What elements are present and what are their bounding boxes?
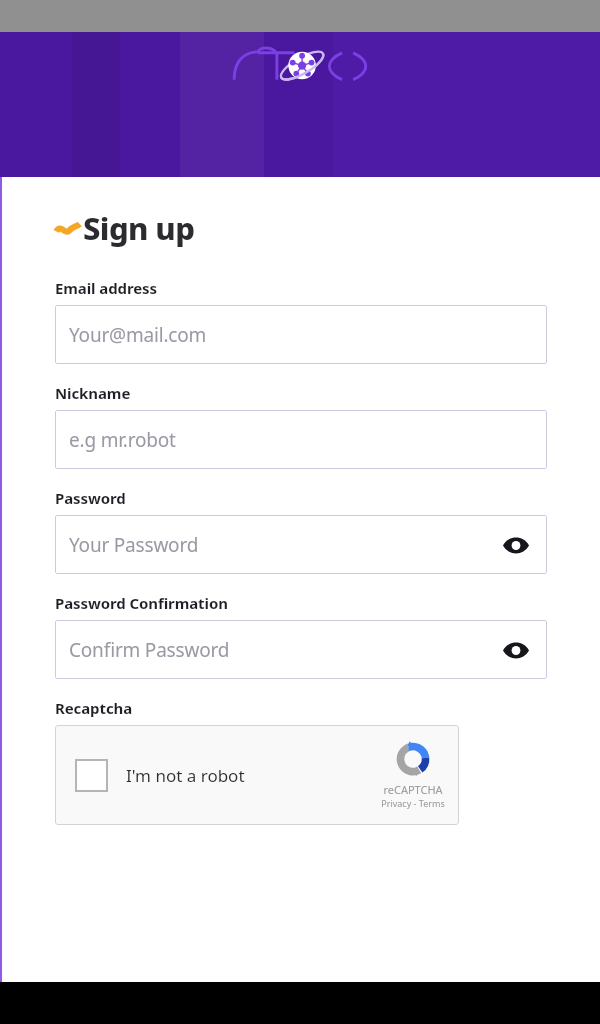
button[interactable]: Confirm Password	[55, 620, 547, 679]
staticText: Confirm Password	[69, 637, 499, 663]
button[interactable]: Your Password	[55, 515, 547, 574]
staticText: Your Password	[69, 532, 499, 558]
button[interactable]: Show password	[499, 528, 533, 562]
staticText: Nickname	[55, 383, 131, 403]
staticText: Password	[55, 488, 126, 508]
staticText: Email address	[55, 278, 157, 298]
button[interactable]: e.g mr.robot	[55, 410, 547, 469]
staticText: Recaptcha	[55, 698, 133, 718]
staticText: Password Confirmation	[55, 593, 228, 613]
staticText: Your@mail.com	[69, 322, 533, 348]
staticText: e.g mr.robot	[69, 427, 533, 453]
staticText: I'm not a robot	[126, 764, 245, 787]
button[interactable]: Show password	[499, 633, 533, 667]
staticText: reCAPTCHA	[383, 782, 443, 797]
staticText: Privacy - Terms	[381, 797, 445, 809]
button[interactable]: I'm not a robot checkbox	[55, 725, 459, 825]
staticText: Sign up	[83, 207, 195, 249]
button[interactable]: Your@mail.com	[55, 305, 547, 364]
button[interactable]: STOX logo	[230, 40, 370, 104]
button[interactable]: I'm not a robot checkbox	[75, 759, 108, 792]
